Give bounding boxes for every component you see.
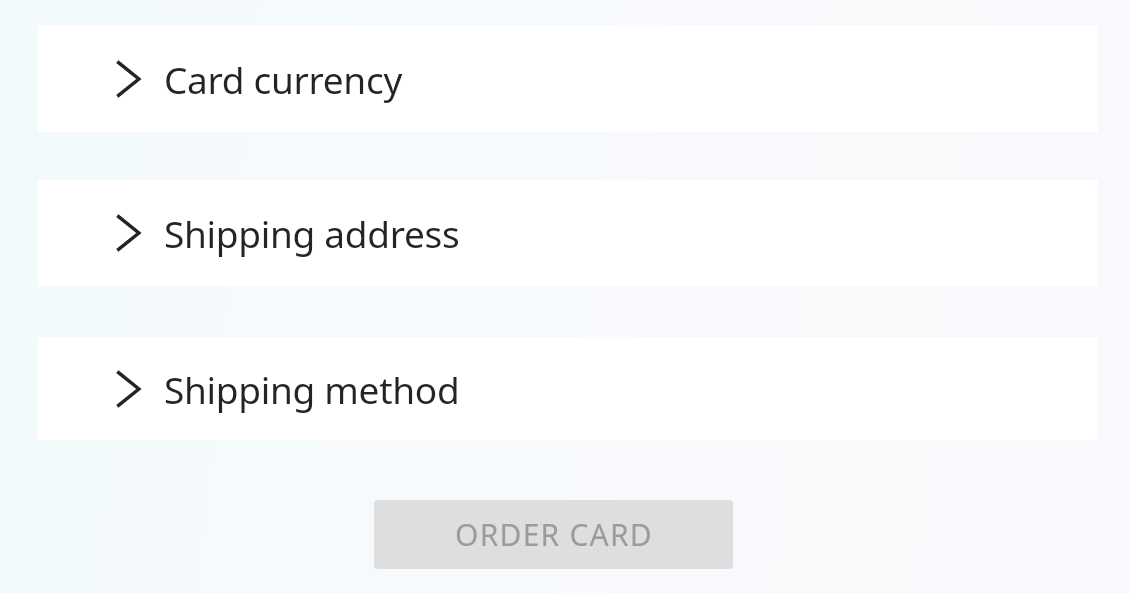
button[interactable]: Shipping method xyxy=(38,337,1098,440)
staticText: Shipping address xyxy=(164,208,460,258)
staticText: Shipping method xyxy=(164,364,460,414)
staticText: ORDER CARD xyxy=(455,514,653,555)
staticText: Card currency xyxy=(164,54,402,104)
button[interactable]: Card currency xyxy=(38,25,1098,132)
button[interactable]: Shipping address xyxy=(38,180,1098,286)
button[interactable]: ORDER CARD xyxy=(374,500,733,569)
